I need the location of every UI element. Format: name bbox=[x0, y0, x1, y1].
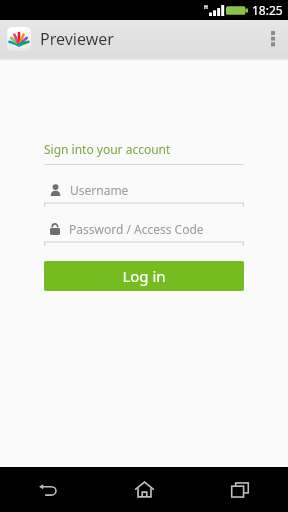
staticText: Log in bbox=[122, 266, 166, 286]
staticText: H bbox=[204, 4, 208, 11]
staticText: Previewer bbox=[40, 28, 114, 50]
staticText: 18:25 bbox=[252, 2, 283, 18]
button[interactable]: Home bbox=[96, 467, 192, 512]
button[interactable]: Log in bbox=[44, 261, 244, 291]
button[interactable]: Back bbox=[0, 467, 96, 512]
staticText: Sign into your account bbox=[44, 141, 171, 157]
button[interactable]: Password / Access Code bbox=[44, 219, 244, 247]
staticText: Password / Access Code bbox=[69, 221, 204, 237]
staticText: Username bbox=[70, 182, 129, 198]
button[interactable]: Username bbox=[44, 180, 244, 208]
button[interactable]: More options bbox=[258, 20, 288, 58]
button[interactable]: Recent apps bbox=[192, 467, 288, 512]
